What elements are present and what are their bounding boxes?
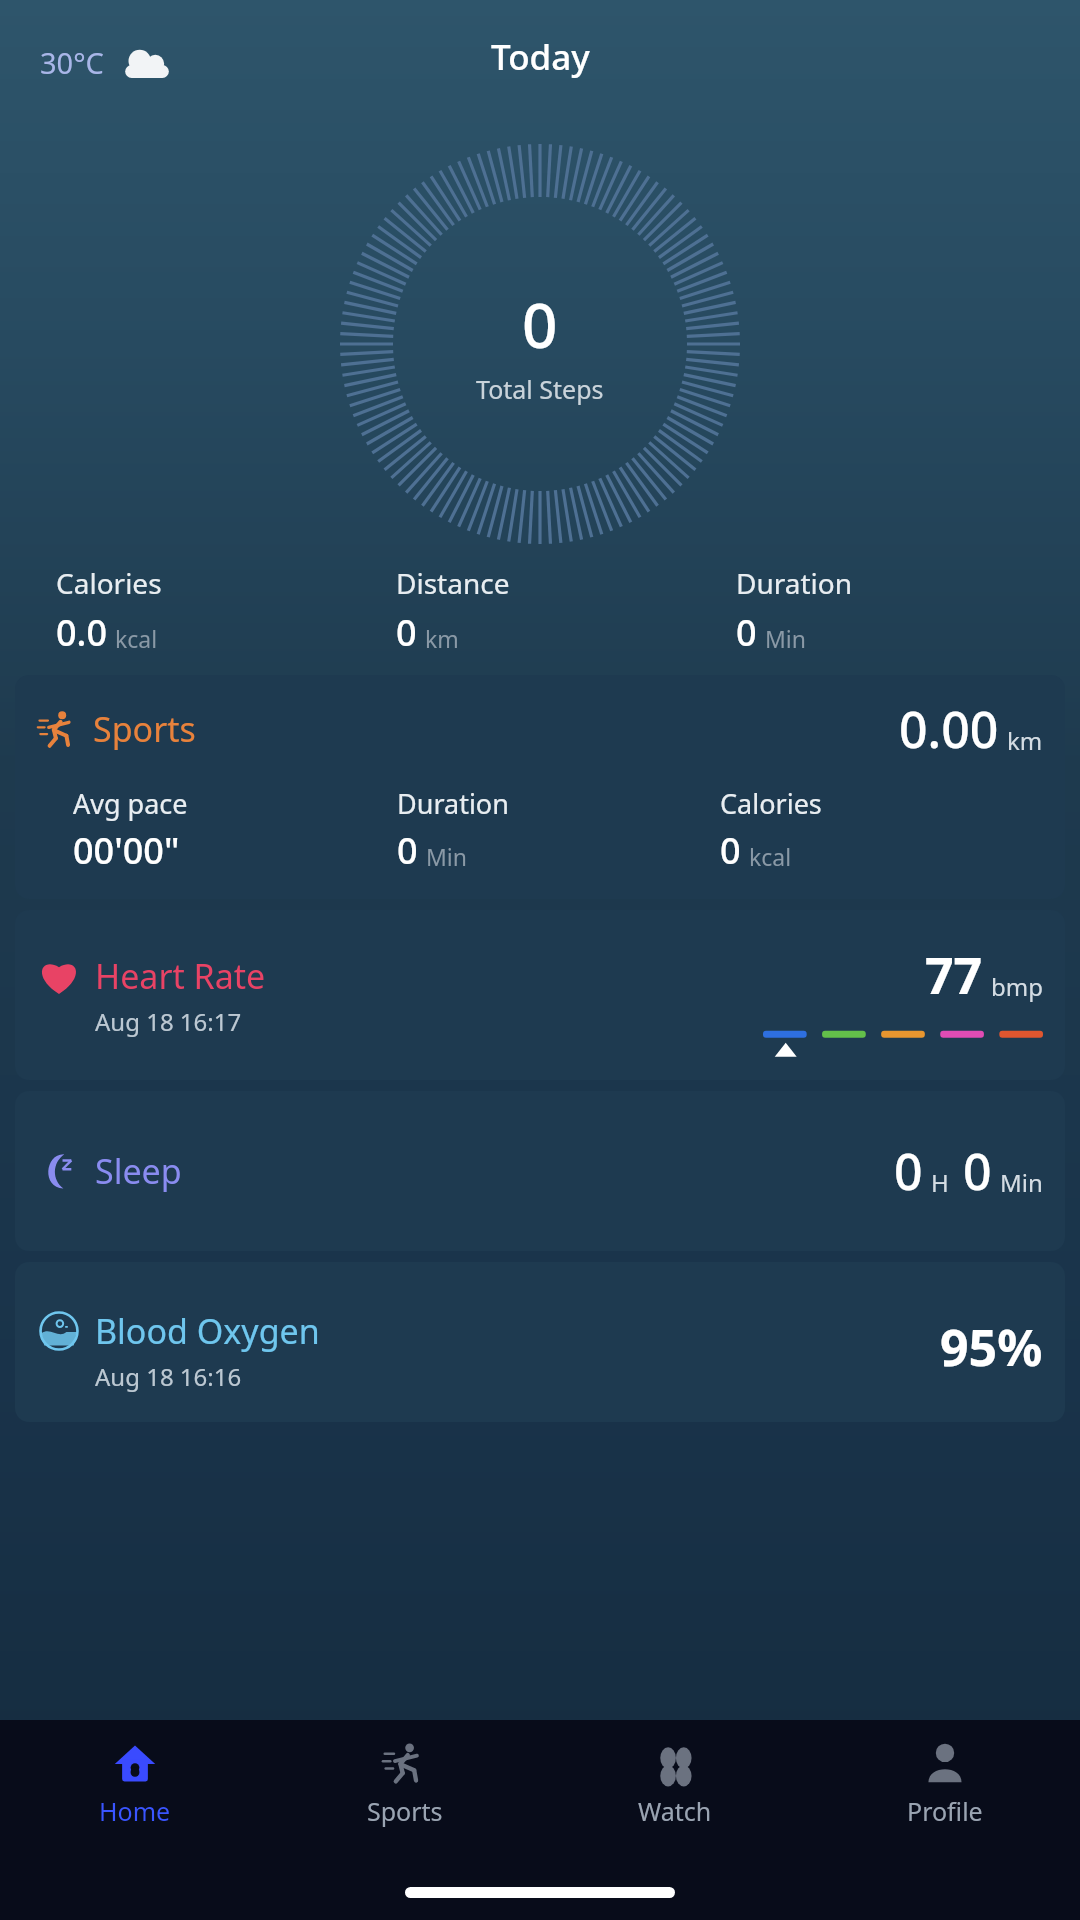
- staticText: Aug 18 16:17: [95, 1005, 242, 1038]
- staticText: kcal: [749, 841, 792, 872]
- staticText: Home: [99, 1794, 171, 1828]
- staticText: Sports: [367, 1794, 443, 1828]
- staticText: 0: [522, 282, 558, 366]
- button[interactable]: 30°C: [36, 39, 177, 86]
- staticText: 0: [963, 1137, 992, 1205]
- staticText: Aug 18 16:16: [95, 1360, 242, 1393]
- staticText: Min: [765, 623, 807, 654]
- staticText: Duration: [397, 785, 509, 822]
- button[interactable]: Heart Rate: [15, 910, 1065, 1080]
- staticText: Blood Oxygen: [95, 1308, 320, 1354]
- staticText: Duration: [736, 564, 853, 602]
- button[interactable]: Sleep: [15, 1091, 1065, 1251]
- button[interactable]: Sports: [15, 675, 1065, 899]
- staticText: km: [425, 623, 459, 654]
- staticText: Min: [1000, 1166, 1043, 1199]
- button[interactable]: Blood Oxygen: [15, 1262, 1065, 1422]
- staticText: Min: [426, 841, 468, 872]
- button[interactable]: Home: [0, 1734, 270, 1834]
- staticText: kcal: [115, 623, 158, 654]
- staticText: Sleep: [95, 1148, 182, 1194]
- button[interactable]: Distance: [370, 564, 710, 657]
- staticText: Total Steps: [476, 372, 604, 406]
- staticText: Distance: [396, 564, 510, 602]
- staticText: bmp: [991, 970, 1043, 1003]
- staticText: 0: [736, 608, 757, 657]
- staticText: 0: [894, 1137, 923, 1205]
- staticText: 0: [396, 608, 417, 657]
- staticText: 95%: [940, 1313, 1043, 1381]
- staticText: 0: [720, 826, 741, 875]
- staticText: Sports: [93, 706, 196, 752]
- button[interactable]: Calories: [30, 564, 370, 657]
- button[interactable]: Sports: [270, 1734, 540, 1834]
- staticText: 0.0: [56, 608, 107, 657]
- staticText: Calories: [56, 564, 162, 602]
- staticText: Watch: [638, 1794, 712, 1828]
- staticText: 30°C: [40, 43, 104, 82]
- staticText: km: [1007, 724, 1043, 757]
- staticText: 0: [397, 826, 418, 875]
- staticText: Avg pace: [73, 785, 188, 822]
- staticText: 0.00: [899, 695, 999, 763]
- button[interactable]: Watch: [540, 1734, 810, 1834]
- button[interactable]: Profile: [810, 1734, 1080, 1834]
- staticText: Heart Rate: [95, 953, 266, 999]
- staticText: Calories: [720, 785, 822, 822]
- staticText: H: [931, 1166, 949, 1199]
- staticText: Today: [491, 33, 590, 81]
- button[interactable]: Duration: [710, 564, 1050, 657]
- staticText: 00'00": [73, 826, 180, 875]
- staticText: Profile: [907, 1794, 983, 1828]
- staticText: 77: [925, 941, 983, 1009]
